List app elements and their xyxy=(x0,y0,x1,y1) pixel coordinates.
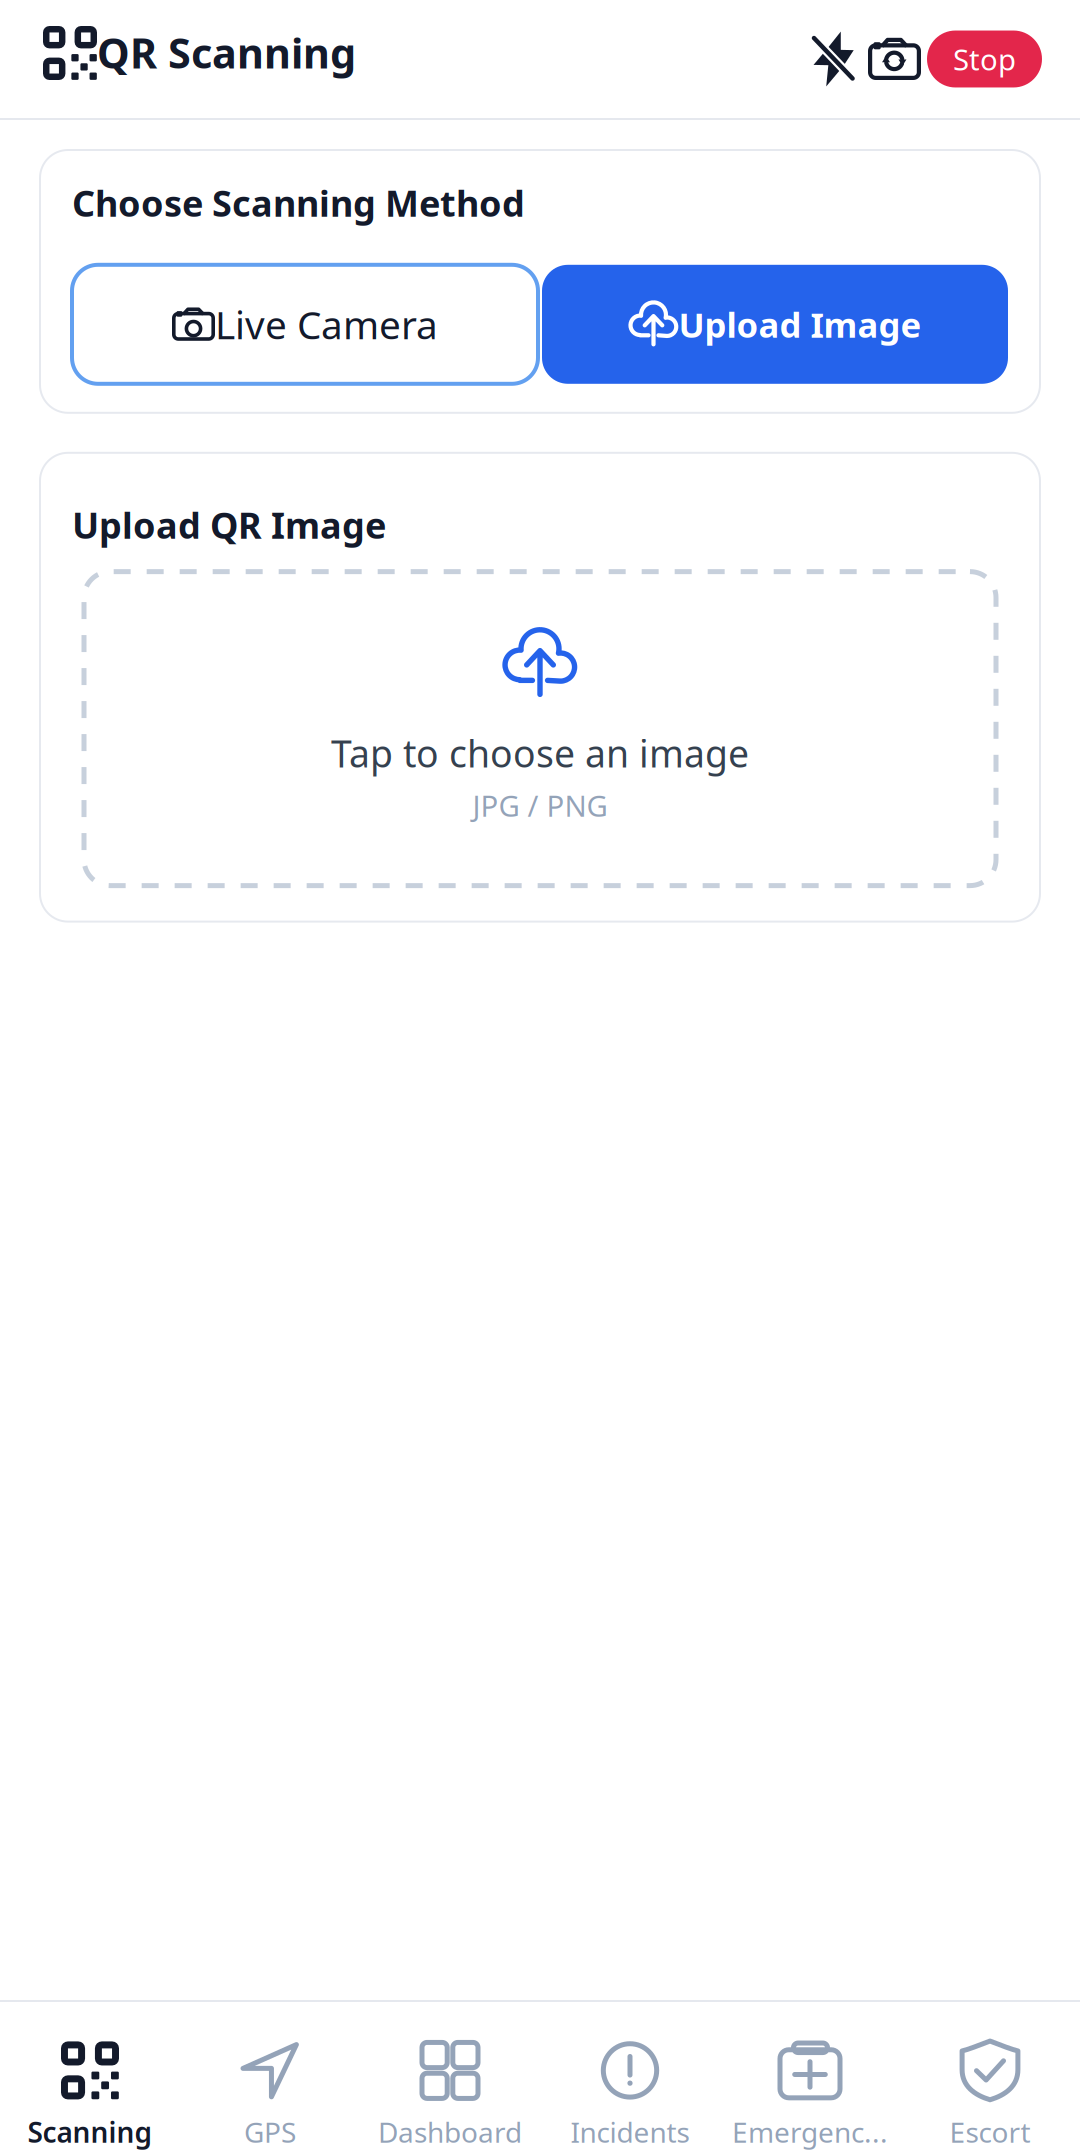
staticText: Emergenc... xyxy=(732,2113,888,2150)
button[interactable]: Live Camera xyxy=(72,265,538,384)
staticText: Stop xyxy=(953,39,1016,78)
staticText: QR Scanning xyxy=(97,25,356,80)
staticText: Dashboard xyxy=(378,2113,522,2150)
staticText: Tap to choose an image xyxy=(331,728,749,778)
button[interactable]: Upload Image xyxy=(542,265,1008,384)
button[interactable]: Dashboard xyxy=(360,2001,540,2150)
staticText: Upload Image xyxy=(678,301,921,347)
staticText: Live Camera xyxy=(215,299,438,350)
staticText: Escort xyxy=(949,2113,1030,2150)
button[interactable]: GPS xyxy=(180,2001,360,2150)
button[interactable]: Incidents xyxy=(540,2001,720,2150)
staticText: Choose Scanning Method xyxy=(72,179,525,227)
staticText: Upload QR Image xyxy=(72,501,386,549)
staticText: Scanning xyxy=(27,2113,152,2150)
button[interactable]: Stop xyxy=(927,30,1042,87)
staticText: Incidents xyxy=(570,2113,689,2150)
button[interactable]: Scanning xyxy=(0,2001,180,2150)
button[interactable]: Flash off xyxy=(800,29,862,88)
button[interactable]: Tap to choose an image xyxy=(72,572,1008,886)
staticText: JPG / PNG xyxy=(472,786,607,825)
button[interactable]: Escort xyxy=(900,2001,1080,2150)
button[interactable]: Switch camera xyxy=(862,38,927,80)
button[interactable]: Emergenc... xyxy=(720,2001,900,2150)
staticText: GPS xyxy=(244,2113,296,2150)
